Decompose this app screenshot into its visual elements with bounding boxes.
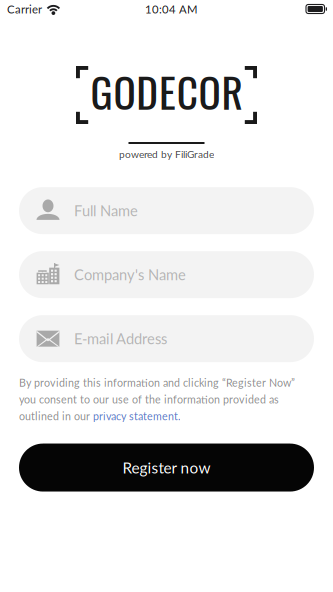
staticText: Company's Name <box>74 266 186 283</box>
staticText: E-mail Address <box>74 330 167 347</box>
staticText: 10:04 AM <box>145 2 198 16</box>
button[interactable]: Register now <box>19 444 314 492</box>
staticText: Carrier <box>7 2 42 16</box>
staticText: GODECOR <box>91 60 242 122</box>
staticText: Full Name <box>74 202 138 219</box>
staticText: powered by FiliGrade <box>119 148 214 160</box>
staticText: By providing this information and clicki… <box>19 376 295 389</box>
staticText: privacy statement. <box>93 410 181 423</box>
button[interactable]: privacy statement. <box>93 410 181 423</box>
staticText: you consent to our use of the informatio… <box>19 393 279 406</box>
staticText: Register now <box>122 458 210 477</box>
staticText: outlined in our <box>19 410 93 423</box>
button[interactable]: Company's Name <box>19 251 314 298</box>
button[interactable]: E-mail Address <box>19 315 314 362</box>
button[interactable]: Full Name <box>19 187 314 234</box>
